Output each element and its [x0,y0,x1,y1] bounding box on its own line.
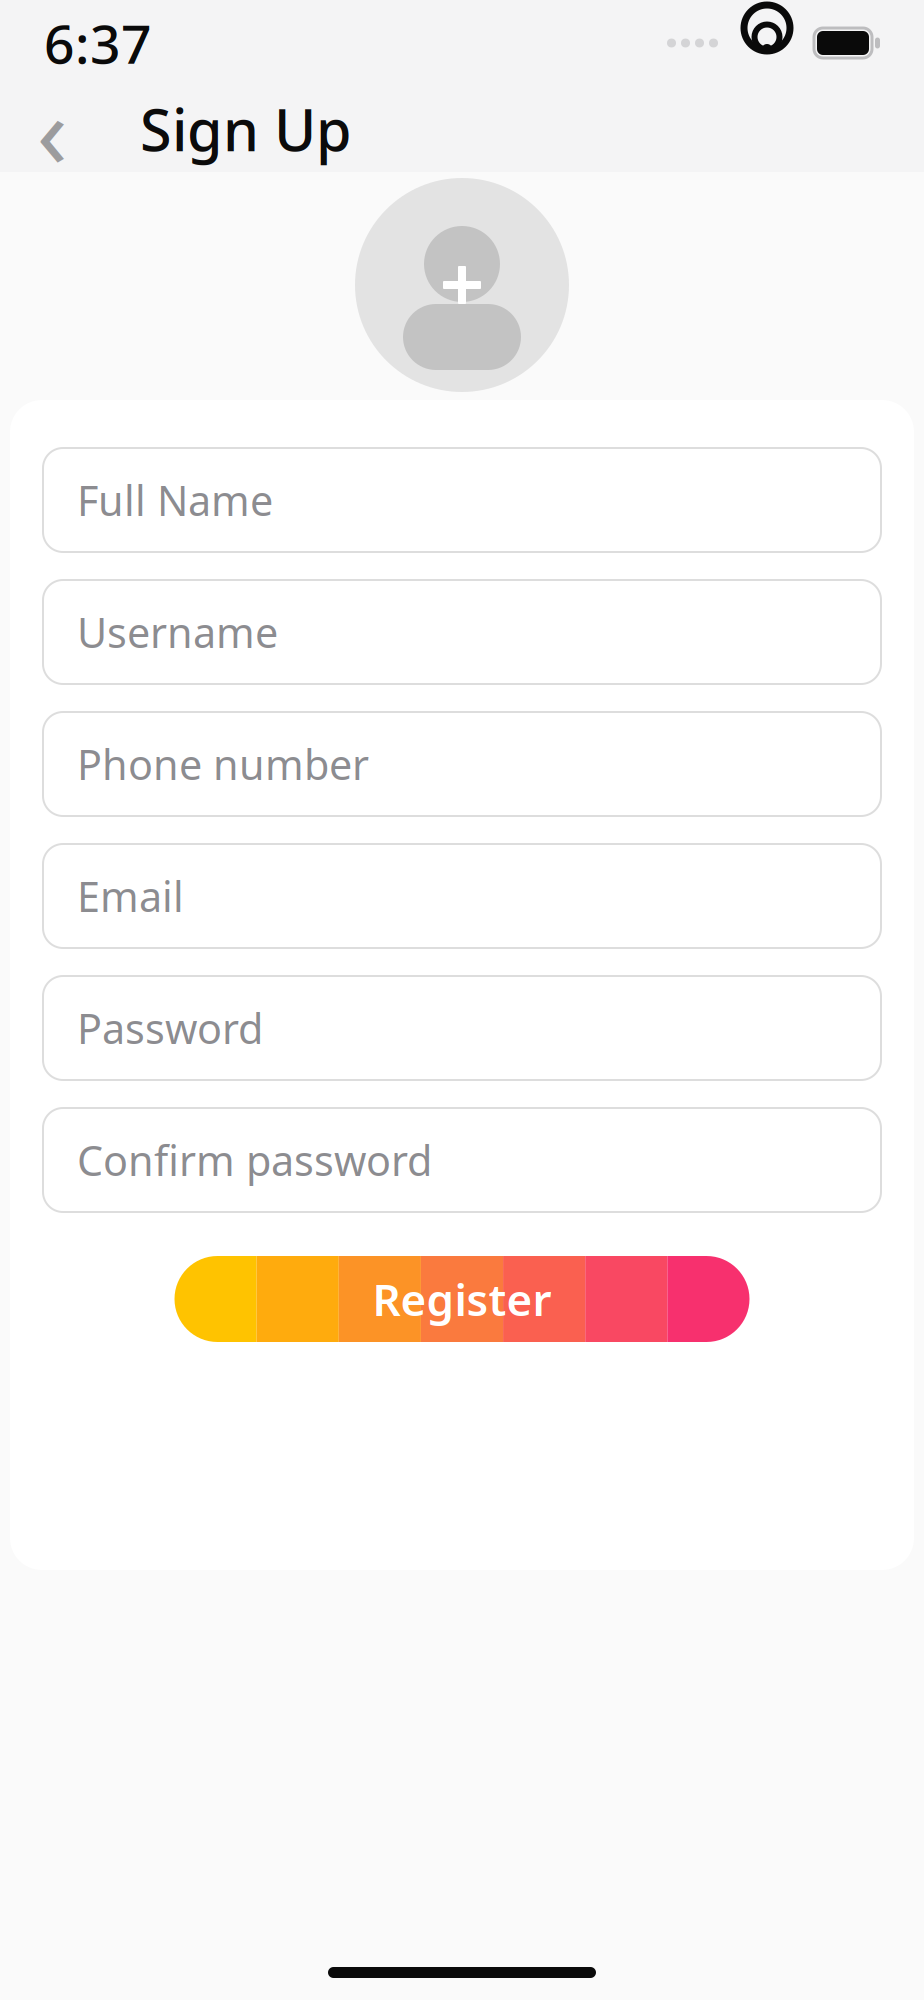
staticText: Username [77,605,278,659]
staticText: Password [77,1001,263,1055]
button[interactable]: Password [43,976,881,1080]
button[interactable]: Back [14,91,90,167]
button[interactable]: Confirm password [43,1108,881,1212]
button[interactable]: Add profile photo [355,178,569,392]
button[interactable]: Phone number [43,712,881,816]
staticText: 6:37 [44,8,152,78]
button[interactable]: Username [43,580,881,684]
staticText: Confirm password [77,1133,432,1187]
button[interactable]: Email [43,844,881,948]
staticText: ‹ [36,62,67,196]
staticText: Phone number [77,737,369,791]
staticText: Full Name [77,473,273,527]
button[interactable]: Register [174,1256,749,1342]
staticText: Register [372,1270,551,1328]
staticText: Sign Up [140,91,352,167]
staticText: Email [77,869,184,923]
button[interactable]: Full Name [43,448,881,552]
